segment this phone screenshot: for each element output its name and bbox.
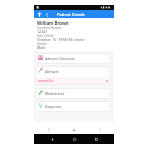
button[interactable]: Home [70, 135, 78, 143]
button[interactable]: Medications [35, 88, 111, 99]
staticText: Diagnoses [45, 104, 62, 109]
button[interactable]: Back [43, 11, 50, 18]
staticText: Allergies [45, 69, 59, 74]
button[interactable]: Notes [89, 122, 111, 134]
staticText: Advance Directives [45, 56, 75, 61]
staticText: October 10, 1958 (66 years) [37, 37, 85, 41]
button[interactable]: App home [35, 10, 43, 18]
staticText: 12241 [37, 29, 48, 33]
staticText: Medications [45, 91, 65, 96]
staticText: Patient Details [57, 12, 85, 17]
button[interactable]: Back [48, 135, 56, 143]
staticText: Male [37, 45, 46, 49]
button[interactable]: Patients [38, 122, 60, 134]
staticText: William Brown [37, 20, 69, 26]
button[interactable]: Diagnoses [35, 101, 111, 112]
button[interactable]: Recents [92, 135, 100, 143]
button[interactable]: Allergies [35, 66, 111, 85]
staticText: amoxicillin [38, 79, 54, 83]
button[interactable]: Tasks [63, 122, 85, 134]
staticText: Gender [37, 42, 47, 46]
staticText: Date of Birth [37, 34, 54, 38]
staticText: Insurance Number [37, 26, 62, 30]
button[interactable]: Advance Directives [35, 53, 111, 64]
